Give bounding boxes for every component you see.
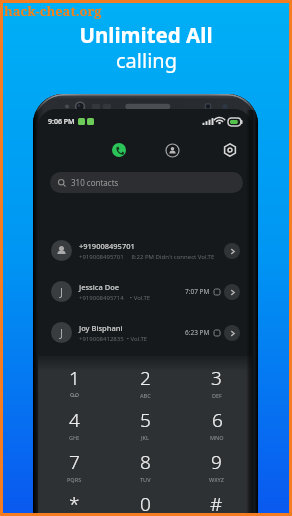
staticText: 9:06 PM	[48, 117, 75, 127]
button[interactable]: 4	[38, 402, 110, 444]
button[interactable]: J	[38, 271, 252, 312]
staticText: 2	[140, 365, 151, 391]
staticText: 8	[140, 449, 151, 475]
staticText: 6	[212, 407, 223, 433]
button[interactable]: #	[181, 486, 252, 516]
button[interactable]: 6	[181, 402, 252, 444]
staticText: 7:07 PM	[185, 287, 210, 296]
button[interactable]: 8	[110, 444, 181, 486]
button[interactable]: 3	[181, 360, 252, 402]
staticText: GHI	[69, 434, 80, 441]
staticText: Jessica Doe	[79, 282, 120, 292]
button[interactable]: 5	[110, 402, 181, 444]
staticText: 6:23 PM	[185, 328, 210, 337]
staticText: hack-cheat.org	[4, 2, 102, 20]
staticText: 7	[69, 449, 80, 475]
button[interactable]: 2	[110, 360, 181, 402]
button[interactable]: Call details	[224, 325, 240, 341]
staticText: JKL	[141, 434, 150, 441]
staticText: 3	[211, 365, 222, 391]
button[interactable]: 1	[38, 360, 110, 402]
staticText: 310 contacts	[71, 177, 119, 188]
staticText: 1	[69, 365, 80, 391]
button[interactable]: Call details	[224, 243, 240, 259]
staticText: 9	[211, 449, 222, 475]
staticText: ABC	[140, 392, 151, 399]
button[interactable]: 0	[110, 486, 181, 516]
staticText: MNO	[210, 434, 224, 441]
button[interactable]: Call details	[224, 284, 240, 300]
staticText: TUV	[140, 476, 151, 483]
staticText: Joy Bisphani	[79, 323, 123, 333]
button[interactable]: 7	[38, 444, 110, 486]
button[interactable]: Dialpad	[109, 140, 129, 160]
staticText: +919008495701	[79, 241, 135, 251]
staticText: J	[60, 325, 63, 340]
staticText: +919008412835 • Vol.TE	[79, 335, 148, 343]
staticText: DEF	[212, 392, 222, 399]
button[interactable]: 310 contacts	[50, 172, 243, 193]
button[interactable]: Contacts	[162, 140, 182, 160]
button[interactable]: J	[38, 312, 252, 353]
button[interactable]: +919008495701	[38, 230, 252, 271]
staticText: J	[60, 284, 63, 299]
button[interactable]: 9	[181, 444, 252, 486]
staticText: +919008495714 • Vol.TE	[79, 294, 151, 302]
staticText: #	[210, 491, 223, 516]
staticText: 0	[140, 491, 151, 516]
staticText: 5	[140, 407, 151, 433]
staticText: *	[69, 491, 80, 516]
button[interactable]: Settings	[220, 140, 240, 160]
staticText: 4	[69, 407, 80, 433]
button[interactable]: *	[38, 486, 110, 516]
staticText: WXYZ	[209, 476, 224, 483]
staticText: PQRS	[67, 476, 82, 483]
staticText: calling	[116, 47, 177, 74]
staticText: Unlimited All	[79, 21, 213, 49]
staticText: +919008495701 8:22 PM Didn't connect Vol…	[79, 253, 215, 261]
